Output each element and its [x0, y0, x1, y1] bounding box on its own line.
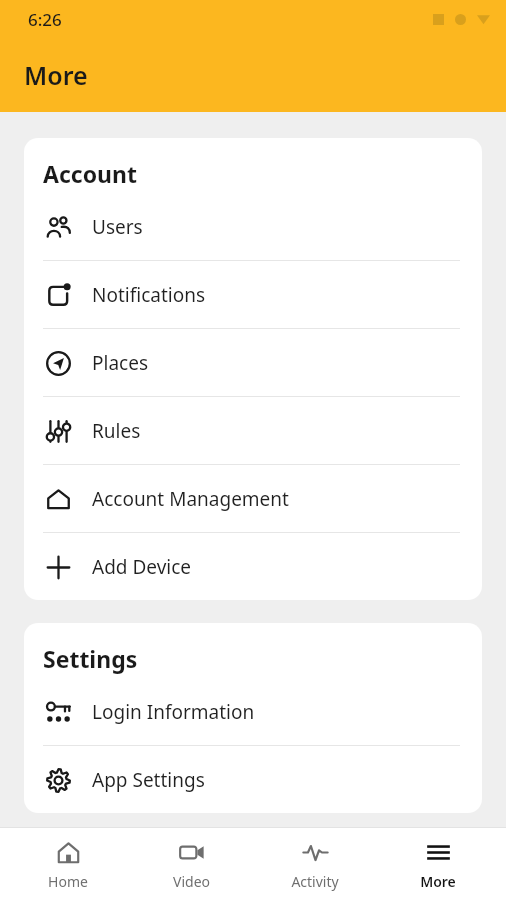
button[interactable]: Places: [24, 329, 482, 397]
button[interactable]: Account Management: [24, 465, 482, 533]
button[interactable]: App Settings: [24, 746, 482, 813]
other: More: [425, 839, 452, 866]
staticText: Activity: [291, 872, 339, 891]
staticText: Settings: [43, 643, 138, 674]
staticText: Login Information: [92, 699, 255, 725]
staticText: More: [420, 872, 456, 891]
staticText: Places: [92, 350, 148, 376]
staticText: Home: [48, 872, 88, 891]
button[interactable]: Activity: [260, 831, 370, 897]
other: Home: [55, 839, 82, 866]
staticText: App Settings: [92, 767, 205, 793]
other: Activity: [302, 839, 329, 866]
staticText: Add Device: [92, 554, 192, 580]
button[interactable]: Login Information: [24, 678, 482, 746]
staticText: Video: [173, 872, 210, 891]
button[interactable]: Rules: [24, 397, 482, 465]
button[interactable]: Notifications: [24, 261, 482, 329]
button[interactable]: Home: [13, 831, 123, 897]
button[interactable]: Add Device: [24, 533, 482, 600]
staticText: Rules: [92, 418, 141, 444]
staticText: More: [24, 58, 88, 92]
button[interactable]: Video: [136, 831, 246, 897]
staticText: Users: [92, 214, 143, 240]
button[interactable]: Users: [24, 193, 482, 261]
staticText: Account: [43, 158, 137, 189]
staticText: Notifications: [92, 282, 206, 308]
button[interactable]: More: [383, 831, 493, 897]
other: Video: [178, 839, 205, 866]
staticText: 6:26: [28, 8, 62, 31]
staticText: Account Management: [92, 486, 289, 512]
